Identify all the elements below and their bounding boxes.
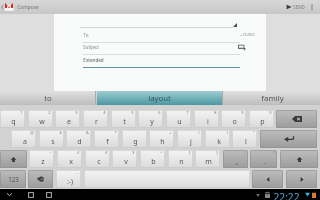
staticText: :-) bbox=[67, 177, 73, 186]
staticText: q bbox=[11, 117, 16, 127]
button[interactable]: d bbox=[66, 130, 91, 148]
staticText: 5 bbox=[131, 110, 134, 115]
button[interactable]: Left bbox=[252, 170, 283, 188]
button[interactable]: . bbox=[250, 150, 277, 168]
button[interactable]: j bbox=[177, 130, 202, 148]
staticText: 6 bbox=[158, 110, 161, 115]
button[interactable]: q bbox=[0, 110, 25, 128]
button[interactable]: Navigate up bbox=[0, 0, 5, 14]
button[interactable]: More options bbox=[307, 0, 317, 14]
button[interactable]: Subject bbox=[83, 44, 240, 55]
button[interactable]: x bbox=[57, 150, 82, 168]
button[interactable]: family bbox=[224, 91, 320, 105]
staticText: 4 bbox=[103, 110, 106, 115]
button[interactable]: t bbox=[111, 110, 136, 128]
staticText: " bbox=[253, 130, 255, 135]
staticText: To bbox=[83, 32, 89, 38]
staticText: [ bbox=[189, 150, 191, 155]
staticText: c bbox=[97, 157, 101, 167]
staticText: . bbox=[264, 157, 266, 167]
button[interactable]: h bbox=[149, 130, 174, 148]
button[interactable]: f bbox=[94, 130, 119, 148]
button[interactable]: m bbox=[195, 150, 220, 168]
button[interactable]: Space bbox=[84, 170, 250, 188]
button[interactable]: u bbox=[166, 110, 191, 128]
staticText: Subject bbox=[83, 44, 99, 50]
button[interactable]: g bbox=[122, 130, 147, 148]
button[interactable]: Recents bbox=[43, 189, 54, 200]
button[interactable]: Extended bbox=[83, 57, 240, 69]
staticText: 9 bbox=[241, 110, 244, 115]
staticText: ) bbox=[226, 130, 228, 135]
button[interactable]: n bbox=[168, 150, 193, 168]
button[interactable]: a bbox=[11, 130, 36, 148]
button[interactable]: Back bbox=[4, 189, 15, 200]
button[interactable]: Change keyboard bbox=[28, 170, 53, 188]
staticText: t bbox=[123, 117, 126, 127]
staticText: layout bbox=[148, 93, 171, 104]
button[interactable]: Emoji bbox=[56, 170, 81, 188]
staticText: b bbox=[151, 157, 156, 167]
staticText: s bbox=[51, 137, 55, 147]
staticText: 22:22 bbox=[273, 190, 300, 200]
staticText: , bbox=[236, 157, 238, 167]
button[interactable]: , bbox=[223, 150, 248, 168]
staticText: ~ bbox=[49, 150, 52, 155]
staticText: 2 bbox=[48, 110, 51, 115]
button[interactable]: + CC/BCC bbox=[240, 32, 255, 37]
staticText: m bbox=[205, 157, 212, 167]
staticText: 8 bbox=[214, 110, 217, 115]
button[interactable]: c bbox=[85, 150, 110, 168]
button[interactable]: i bbox=[194, 110, 219, 128]
staticText: ¥ bbox=[132, 150, 135, 155]
button[interactable]: w bbox=[28, 110, 53, 128]
staticText: p bbox=[260, 117, 265, 127]
staticText: h bbox=[160, 137, 165, 147]
button[interactable]: Backspace bbox=[276, 110, 317, 128]
button[interactable]: z bbox=[29, 150, 54, 168]
button[interactable]: b bbox=[140, 150, 165, 168]
staticText: ? bbox=[273, 150, 275, 155]
button[interactable]: r bbox=[83, 110, 108, 128]
button[interactable]: To bbox=[83, 32, 240, 43]
staticText: l bbox=[245, 137, 247, 147]
button[interactable]: to bbox=[0, 91, 95, 105]
staticText: SEND bbox=[293, 4, 305, 10]
staticText: e bbox=[67, 117, 71, 127]
staticText: v bbox=[124, 157, 128, 167]
button[interactable]: v bbox=[112, 150, 137, 168]
staticText: € bbox=[105, 150, 108, 155]
button[interactable]: SEND bbox=[286, 0, 305, 14]
button[interactable]: l bbox=[232, 130, 257, 148]
staticText: y bbox=[150, 117, 154, 127]
button[interactable]: y bbox=[138, 110, 163, 128]
button[interactable]: p bbox=[249, 110, 274, 128]
staticText: ( bbox=[198, 130, 200, 135]
staticText: ] bbox=[216, 150, 218, 155]
staticText: @ bbox=[30, 130, 34, 135]
staticText: d bbox=[77, 137, 82, 147]
staticText: to bbox=[44, 93, 52, 104]
staticText: & bbox=[86, 130, 89, 135]
staticText: r bbox=[95, 117, 98, 127]
button[interactable]: e bbox=[55, 110, 80, 128]
button[interactable]: Home bbox=[25, 189, 36, 200]
button[interactable]: Enter bbox=[260, 130, 317, 148]
button[interactable]: Right bbox=[286, 170, 317, 188]
button[interactable]: Shift bbox=[0, 150, 27, 168]
staticText: Extended bbox=[83, 57, 104, 63]
button[interactable]: s bbox=[39, 130, 64, 148]
staticText: - bbox=[143, 130, 145, 135]
button[interactable]: Numbers bbox=[0, 170, 26, 188]
staticText: family bbox=[261, 93, 284, 104]
staticText: j bbox=[190, 137, 192, 147]
button[interactable]: Insert picture bbox=[237, 43, 246, 52]
button[interactable]: o bbox=[221, 110, 246, 128]
button[interactable]: k bbox=[205, 130, 230, 148]
button[interactable]: layout bbox=[97, 91, 222, 105]
staticText: f bbox=[106, 137, 109, 147]
staticText: o bbox=[232, 117, 237, 127]
staticText: a bbox=[23, 137, 27, 147]
button[interactable]: Shift bbox=[280, 150, 318, 168]
staticText: ^ bbox=[160, 150, 163, 155]
